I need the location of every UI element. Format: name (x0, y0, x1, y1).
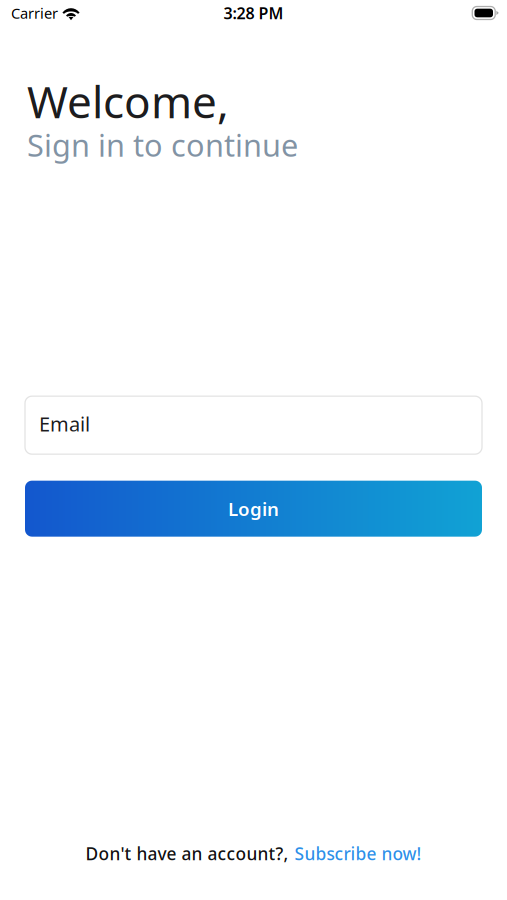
staticText: Login (228, 496, 279, 521)
button[interactable]: Email (25, 396, 482, 454)
staticText: Welcome, (27, 72, 229, 130)
staticText: 3:28 PM (223, 2, 283, 24)
button[interactable]: Subscribe now! (294, 842, 421, 865)
staticText: Sign in to continue (27, 124, 298, 165)
staticText: Subscribe now! (294, 842, 421, 865)
staticText: Email (39, 410, 90, 437)
staticText: Carrier (11, 3, 58, 23)
button[interactable]: Login (25, 481, 482, 537)
staticText: Don't have an account?, (85, 842, 288, 865)
